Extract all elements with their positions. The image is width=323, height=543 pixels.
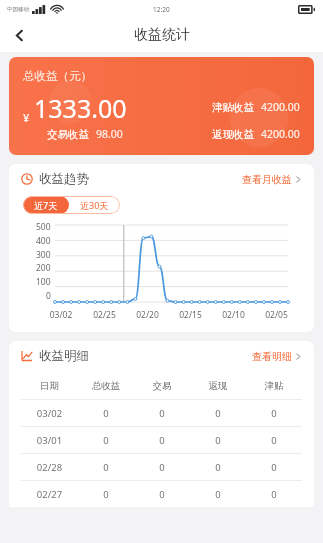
- staticText: 02/25: [83, 309, 126, 321]
- staticText: 200: [36, 262, 51, 274]
- staticText: 4200.00: [261, 100, 300, 114]
- staticText: 0: [190, 407, 246, 420]
- staticText: 400: [36, 235, 51, 247]
- staticText: 0: [190, 461, 246, 474]
- staticText: 查看月收益: [242, 173, 292, 186]
- staticText: 0: [190, 488, 246, 501]
- staticText: 查看明细: [252, 350, 292, 363]
- staticText: 返现收益: [212, 128, 254, 141]
- staticText: 02/05: [255, 309, 298, 321]
- button[interactable]: 查看月收益: [240, 169, 304, 190]
- staticText: 交易收益: [47, 128, 89, 141]
- staticText: 收益统计: [134, 26, 190, 44]
- staticText: 近30天: [80, 199, 109, 211]
- staticText: 0: [78, 434, 134, 447]
- staticText: 1333.00: [34, 91, 127, 125]
- button[interactable]: 查看明细: [250, 346, 304, 367]
- staticText: 0: [134, 407, 190, 420]
- staticText: 02/10: [212, 309, 255, 321]
- staticText: 津贴: [246, 380, 302, 392]
- staticText: 03/01: [21, 434, 78, 447]
- staticText: 0: [246, 434, 302, 447]
- staticText: ¥: [23, 110, 30, 125]
- staticText: 收益趋势: [39, 171, 89, 187]
- staticText: 总收益: [78, 380, 134, 392]
- staticText: 0: [134, 434, 190, 447]
- staticText: 500: [36, 221, 51, 233]
- button[interactable]: 总收益（元）: [9, 57, 314, 155]
- button[interactable]: 近30天: [69, 196, 120, 214]
- staticText: 100: [36, 276, 51, 288]
- staticText: 0: [134, 488, 190, 501]
- staticText: 0: [134, 461, 190, 474]
- staticText: 02/28: [21, 461, 78, 474]
- staticText: 0: [246, 407, 302, 420]
- staticText: 0: [46, 290, 51, 302]
- staticText: 收益明细: [39, 348, 89, 364]
- staticText: 0: [190, 434, 246, 447]
- staticText: 日期: [21, 380, 78, 392]
- staticText: 02/15: [169, 309, 212, 321]
- staticText: 0: [78, 407, 134, 420]
- staticText: 中国移动: [7, 6, 29, 13]
- staticText: 4200.00: [261, 127, 300, 141]
- button[interactable]: Back: [4, 20, 34, 50]
- staticText: 交易: [134, 380, 190, 392]
- staticText: 0: [246, 461, 302, 474]
- button[interactable]: 近7天: [23, 196, 69, 214]
- staticText: 02/20: [126, 309, 169, 321]
- staticText: 02/27: [21, 488, 78, 501]
- staticText: 0: [246, 488, 302, 501]
- staticText: 津贴收益: [212, 101, 254, 114]
- staticText: 03/02: [21, 407, 78, 420]
- staticText: 03/02: [39, 309, 83, 321]
- staticText: 返现: [190, 380, 246, 392]
- staticText: 12:20: [153, 5, 170, 14]
- staticText: 总收益（元）: [23, 69, 92, 83]
- staticText: 300: [36, 249, 51, 261]
- staticText: 98.00: [96, 127, 123, 141]
- staticText: 近7天: [34, 199, 58, 211]
- staticText: 0: [78, 488, 134, 501]
- staticText: 0: [78, 461, 134, 474]
